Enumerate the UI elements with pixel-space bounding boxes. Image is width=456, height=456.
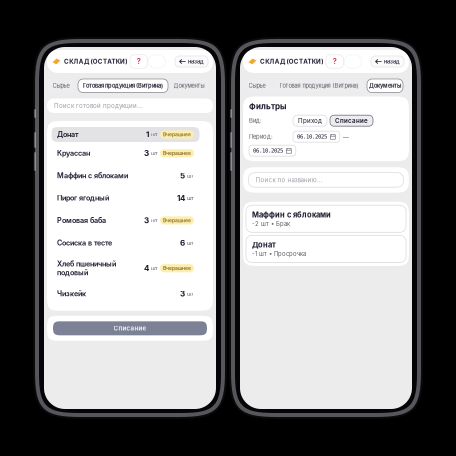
staticText: Документы: [173, 82, 204, 89]
button[interactable]: назад: [371, 56, 404, 67]
staticText: Готовая продукция (Витрина): [279, 82, 358, 89]
button[interactable]: Донат: [246, 235, 406, 262]
staticText: —: [343, 133, 349, 140]
button[interactable]: Поиск готовой продукции...: [47, 98, 213, 113]
button[interactable]: Сырье: [243, 79, 271, 92]
staticText: 06.10.2025: [253, 147, 283, 154]
button[interactable]: Готовая продукция (Витрина): [274, 79, 364, 92]
button[interactable]: Сырье: [47, 79, 75, 92]
staticText: 5: [180, 171, 185, 180]
staticText: Списание: [113, 325, 146, 332]
staticText: Вид:: [249, 117, 262, 124]
staticText: Маффин с яблоками: [57, 171, 128, 180]
staticText: Вчерашнее: [163, 150, 191, 156]
staticText: 14: [177, 193, 185, 203]
staticText: ?: [137, 57, 141, 66]
staticText: СКЛАД (ОСТАТКИ): [64, 58, 127, 65]
staticText: Хлеб пшеничный подовый: [57, 259, 116, 277]
staticText: Период:: [249, 133, 273, 140]
staticText: СКЛАД (ОСТАТКИ): [260, 58, 323, 65]
button[interactable]: Сосиска в тесте: [47, 232, 213, 254]
button[interactable]: Донат: [47, 127, 213, 142]
staticText: Списание: [335, 117, 368, 124]
staticText: Сырье: [248, 82, 265, 89]
button[interactable]: Круассан: [47, 142, 213, 164]
staticText: назад: [384, 58, 400, 65]
button[interactable]: Списание: [330, 115, 373, 126]
staticText: Поиск по названию...: [255, 176, 322, 184]
staticText: -1 шт • Просрочка: [252, 250, 306, 257]
button[interactable]: Маффин с яблоками: [47, 164, 213, 187]
staticText: шт: [187, 195, 194, 201]
staticText: 6: [180, 238, 185, 248]
staticText: 3: [144, 148, 149, 158]
staticText: шт: [187, 290, 194, 297]
button[interactable]: Документы: [367, 79, 403, 92]
staticText: 1: [146, 130, 149, 139]
staticText: шт: [151, 265, 158, 271]
button[interactable]: Пирог ягодный: [47, 187, 213, 209]
button[interactable]: Ромовая баба: [47, 209, 213, 232]
staticText: ?: [333, 57, 337, 66]
staticText: Донат: [57, 130, 79, 139]
staticText: Приход: [298, 117, 322, 124]
staticText: 3: [180, 289, 185, 298]
staticText: Фильтры: [249, 101, 286, 111]
staticText: 4: [144, 263, 149, 273]
button[interactable]: Чизкейк: [47, 282, 213, 305]
button[interactable]: назад: [175, 56, 208, 67]
staticText: Документы: [369, 82, 401, 89]
button[interactable]: Маффин с яблоками: [246, 205, 406, 232]
staticText: Ромовая баба: [57, 216, 106, 225]
staticText: назад: [188, 58, 204, 65]
staticText: шт: [151, 131, 158, 138]
button[interactable]: 06.10.2025: [249, 145, 296, 156]
button[interactable]: Хлеб пшеничный подовый: [47, 254, 213, 282]
button[interactable]: Справка: [127, 55, 147, 68]
staticText: шт: [151, 217, 158, 224]
button[interactable]: Приход: [293, 115, 327, 126]
staticText: Донат: [252, 240, 276, 249]
button[interactable]: Списание: [47, 316, 213, 341]
button[interactable]: Справка: [323, 55, 343, 68]
staticText: Вчерашнее: [163, 265, 191, 271]
staticText: Маффин с яблоками: [252, 210, 331, 219]
staticText: -2 шт • Брак: [252, 220, 290, 227]
staticText: Вчерашнее: [163, 131, 191, 137]
staticText: Поиск готовой продукции...: [54, 102, 143, 109]
staticText: Готовая продукция (Витрина): [83, 82, 163, 89]
staticText: Сырье: [52, 82, 69, 89]
staticText: Вчерашнее: [163, 217, 191, 223]
button[interactable]: Поиск по названию...: [243, 167, 409, 193]
staticText: 3: [144, 216, 149, 225]
staticText: Сосиска в тесте: [57, 238, 112, 247]
staticText: Пирог ягодный: [57, 194, 109, 202]
staticText: шт: [187, 172, 194, 179]
staticText: шт: [187, 239, 194, 246]
staticText: шт: [151, 150, 158, 156]
staticText: Круассан: [57, 149, 90, 157]
button[interactable]: Документы: [171, 79, 207, 92]
staticText: Чизкейк: [57, 289, 86, 298]
button[interactable]: Готовая продукция (Витрина): [78, 79, 168, 92]
staticText: 06.10.2025: [297, 133, 327, 140]
button[interactable]: 06.10.2025: [293, 131, 340, 142]
